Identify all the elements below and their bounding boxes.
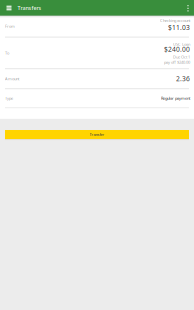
staticText: USC Loan: [173, 41, 190, 47]
button[interactable]: More options: [182, 0, 194, 16]
staticText: Amount: [5, 76, 19, 81]
staticText: From: [5, 24, 15, 29]
staticText: Transfer: [89, 132, 104, 137]
staticText: Checking account: [160, 18, 190, 23]
button[interactable]: From: [0, 16, 194, 37]
staticText: Type: [5, 96, 13, 101]
staticText: To: [5, 50, 9, 55]
button[interactable]: Menu: [0, 0, 17, 16]
button[interactable]: Type: [0, 89, 194, 107]
button[interactable]: Transfer: [5, 130, 189, 140]
button[interactable]: Amount: [0, 69, 194, 88]
button[interactable]: To: [0, 38, 194, 68]
staticText: Transfers: [17, 4, 41, 12]
staticText: Regular payment: [161, 96, 190, 101]
staticText: 2.36: [176, 74, 190, 83]
staticText: pay off $240.00: [164, 59, 190, 65]
staticText: Due Oct 1: [173, 54, 190, 59]
staticText: $11.03: [168, 23, 190, 32]
staticText: $240.00: [164, 45, 190, 54]
